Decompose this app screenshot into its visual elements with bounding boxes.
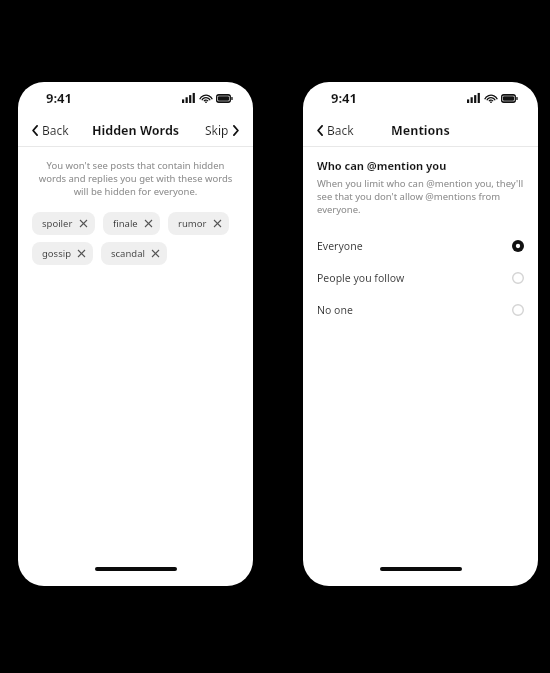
staticText: You won't see posts that contain hidden … [36,159,235,198]
button[interactable]: Back [26,118,75,142]
other: Remove spoiler [80,220,87,227]
button[interactable]: People you follow [303,262,538,294]
button[interactable]: rumor [168,212,229,235]
staticText: People you follow [317,271,512,285]
staticText: Skip [205,122,229,138]
staticText: 9:41 [46,89,72,107]
button[interactable]: scandal [101,242,167,265]
button[interactable]: No one [303,294,538,326]
button[interactable]: Skip [199,118,245,142]
staticText: When you limit who can @mention you, the… [317,177,524,216]
button[interactable]: Everyone [303,230,538,262]
staticText: 9:41 [331,89,357,107]
staticText: Back [327,122,354,138]
staticText: finale [113,217,138,230]
button[interactable]: spoiler [32,212,95,235]
other: Remove scandal [152,250,159,257]
staticText: Mentions [391,122,450,139]
other: Remove rumor [214,220,221,227]
staticText: scandal [111,247,145,260]
staticText: gossip [42,247,71,260]
staticText: Back [42,122,69,138]
other: Remove finale [145,220,152,227]
button[interactable]: gossip [32,242,93,265]
staticText: spoiler [42,217,73,230]
staticText: Everyone [317,239,512,253]
staticText: No one [317,303,512,317]
staticText: rumor [178,217,207,230]
other: Remove gossip [78,250,85,257]
button[interactable]: Back [311,118,360,142]
staticText: Who can @mention you [317,158,447,173]
button[interactable]: finale [103,212,160,235]
staticText: Hidden Words [92,122,180,139]
